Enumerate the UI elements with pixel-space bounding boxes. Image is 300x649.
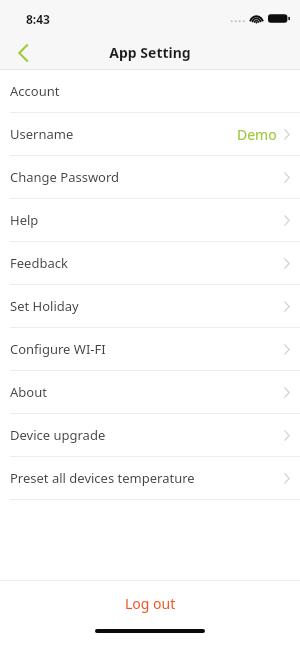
button[interactable]: Configure WI-FI (0, 328, 300, 370)
staticText: Demo (237, 125, 277, 144)
staticText: Account (10, 82, 60, 100)
staticText: Username (10, 125, 74, 143)
staticText: About (10, 383, 47, 401)
staticText: Device upgrade (10, 426, 106, 444)
staticText: Log out (125, 594, 176, 613)
staticText: Feedback (10, 254, 68, 272)
button[interactable]: Set Holiday (0, 285, 300, 327)
button[interactable]: Account (0, 70, 300, 112)
staticText: Help (10, 211, 39, 229)
staticText: 8:43 (26, 11, 50, 27)
button[interactable]: Preset all devices temperature (0, 457, 300, 499)
button[interactable]: About (0, 371, 300, 413)
button[interactable]: Back (0, 35, 46, 70)
staticText: Change Password (10, 168, 120, 186)
button[interactable]: Device upgrade (0, 414, 300, 456)
staticText: App Setting (109, 43, 191, 62)
button[interactable]: Log out (0, 581, 300, 625)
button[interactable]: Username (0, 113, 300, 155)
staticText: Set Holiday (10, 297, 79, 315)
button[interactable]: Feedback (0, 242, 300, 284)
button[interactable]: Help (0, 199, 300, 241)
staticText: Preset all devices temperature (10, 469, 195, 487)
button[interactable]: Change Password (0, 156, 300, 198)
staticText: Configure WI-FI (10, 340, 106, 358)
